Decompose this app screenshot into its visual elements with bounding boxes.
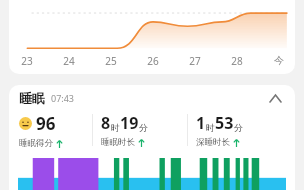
staticText: 96 xyxy=(36,112,56,135)
button[interactable]: Collapse xyxy=(265,88,285,108)
button[interactable]: 96 xyxy=(9,111,92,149)
button[interactable]: 8 xyxy=(93,111,187,149)
staticText: 23 xyxy=(15,54,39,68)
staticText: 睡眠得分 xyxy=(19,138,53,149)
staticText: 分 xyxy=(139,122,148,133)
staticText: 24 xyxy=(57,54,81,68)
button[interactable]: 23 xyxy=(9,0,295,74)
staticText: 时 xyxy=(111,122,120,133)
staticText: 睡眠 xyxy=(19,90,45,106)
button[interactable]: 1 xyxy=(188,111,295,149)
staticText: 28 xyxy=(225,54,249,68)
staticText: 27 xyxy=(183,54,207,68)
staticText: 26 xyxy=(141,54,165,68)
staticText: 深睡时长 xyxy=(196,137,230,148)
button[interactable]: 睡眠 xyxy=(9,85,295,111)
staticText: 时 xyxy=(206,122,215,133)
staticText: 1 xyxy=(196,112,206,134)
staticText: 今 xyxy=(267,54,291,67)
staticText: 19 xyxy=(120,112,139,134)
staticText: 分 xyxy=(234,122,243,133)
staticText: 睡眠时长 xyxy=(101,137,135,148)
staticText: 07:43 xyxy=(51,92,75,104)
staticText: 8 xyxy=(101,112,111,134)
staticText: 25 xyxy=(99,54,123,68)
staticText: 53 xyxy=(215,112,234,134)
